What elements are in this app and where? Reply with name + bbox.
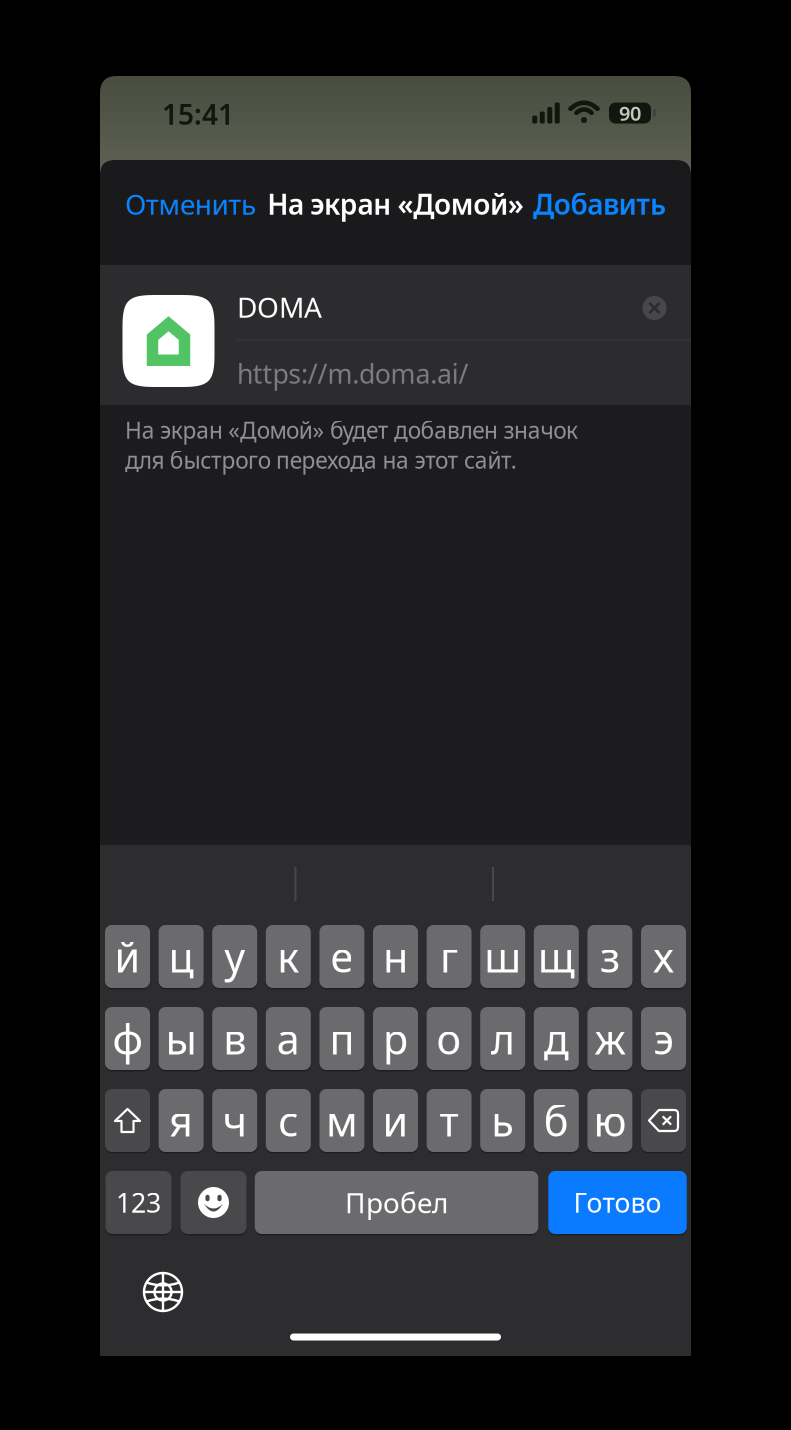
staticText: х [653, 929, 674, 984]
staticText: з [600, 929, 620, 984]
staticText: у [224, 929, 245, 984]
button[interactable]: у [212, 925, 257, 988]
button[interactable]: в [212, 1007, 257, 1070]
button[interactable]: 123 [105, 1171, 171, 1234]
staticText: https://m.doma.ai/ [237, 356, 469, 391]
button[interactable]: ю [587, 1089, 632, 1152]
staticText: Добавить [533, 185, 666, 223]
button[interactable]: Отменить [125, 185, 305, 223]
button[interactable]: с [266, 1089, 311, 1152]
staticText: э [653, 1011, 673, 1066]
staticText: 123 [116, 1185, 161, 1220]
button[interactable]: URL: https://m.doma.ai/ [237, 340, 691, 404]
staticText: н [383, 929, 408, 984]
staticText: д [544, 1011, 569, 1066]
staticText: Готово [573, 1185, 661, 1220]
staticText: к [277, 929, 299, 984]
staticText: р [383, 1011, 408, 1066]
staticText: и [382, 1093, 408, 1148]
button[interactable]: ц [159, 925, 204, 988]
button[interactable]: Готово [548, 1171, 687, 1234]
staticText: я [169, 1093, 193, 1148]
staticText: ж [594, 1011, 625, 1066]
button[interactable]: н [373, 925, 418, 988]
staticText: м [326, 1093, 358, 1148]
button[interactable]: б [534, 1089, 579, 1152]
button[interactable]: й [105, 925, 150, 988]
button[interactable]: ы [159, 1007, 204, 1070]
staticText: 15:41 [162, 95, 234, 133]
button[interactable]: э [641, 1007, 686, 1070]
staticText: в [223, 1011, 246, 1066]
button[interactable]: м [319, 1089, 364, 1152]
staticText: б [544, 1093, 569, 1148]
staticText: DOMA [237, 288, 322, 326]
button[interactable]: л [480, 1007, 525, 1070]
button[interactable]: ч [212, 1089, 257, 1152]
button[interactable]: т [427, 1089, 472, 1152]
staticText: а [277, 1011, 300, 1066]
staticText: т [440, 1093, 459, 1148]
staticText: ф [112, 1011, 142, 1066]
staticText: Пробел [345, 1184, 448, 1221]
staticText: о [437, 1011, 462, 1066]
button[interactable]: щ [534, 925, 579, 988]
staticText: е [330, 929, 353, 984]
staticText: п [329, 1011, 354, 1066]
button[interactable]: Delete [641, 1089, 686, 1152]
button[interactable]: д [534, 1007, 579, 1070]
button[interactable]: г [427, 925, 472, 988]
staticText: й [114, 929, 140, 984]
staticText: л [491, 1011, 515, 1066]
button[interactable]: к [266, 925, 311, 988]
button[interactable]: Clear text [642, 296, 666, 320]
button[interactable]: з [587, 925, 632, 988]
button[interactable]: Shift [105, 1089, 150, 1152]
staticText: с [278, 1093, 298, 1148]
button[interactable]: х [641, 925, 686, 988]
button[interactable]: Next keyboard [144, 1273, 182, 1311]
button[interactable]: Emoji [180, 1171, 246, 1234]
button[interactable]: е [319, 925, 364, 988]
staticText: Отменить [125, 185, 256, 223]
button[interactable]: ф [105, 1007, 150, 1070]
staticText: ы [166, 1011, 197, 1066]
button[interactable]: Добавить [486, 185, 666, 223]
button[interactable]: п [319, 1007, 364, 1070]
button[interactable]: я [159, 1089, 204, 1152]
staticText: для быстрого перехода на этот сайт. [125, 445, 517, 475]
staticText: ш [484, 929, 521, 984]
staticText: ч [223, 1093, 247, 1148]
staticText: г [440, 929, 458, 984]
button[interactable]: Title: DOMA [237, 265, 641, 339]
staticText: ц [169, 929, 194, 984]
staticText: щ [538, 929, 575, 984]
staticText: ь [491, 1093, 514, 1148]
button[interactable]: ж [587, 1007, 632, 1070]
button[interactable]: а [266, 1007, 311, 1070]
button[interactable]: ь [480, 1089, 525, 1152]
button[interactable]: р [373, 1007, 418, 1070]
button[interactable]: о [427, 1007, 472, 1070]
button[interactable]: ш [480, 925, 525, 988]
staticText: 90 [619, 100, 641, 126]
staticText: ю [593, 1093, 626, 1148]
button[interactable]: Пробел [255, 1171, 538, 1234]
staticText: На экран «Домой» [267, 185, 524, 223]
button[interactable]: и [373, 1089, 418, 1152]
staticText: На экран «Домой» будет добавлен значок [125, 415, 578, 445]
